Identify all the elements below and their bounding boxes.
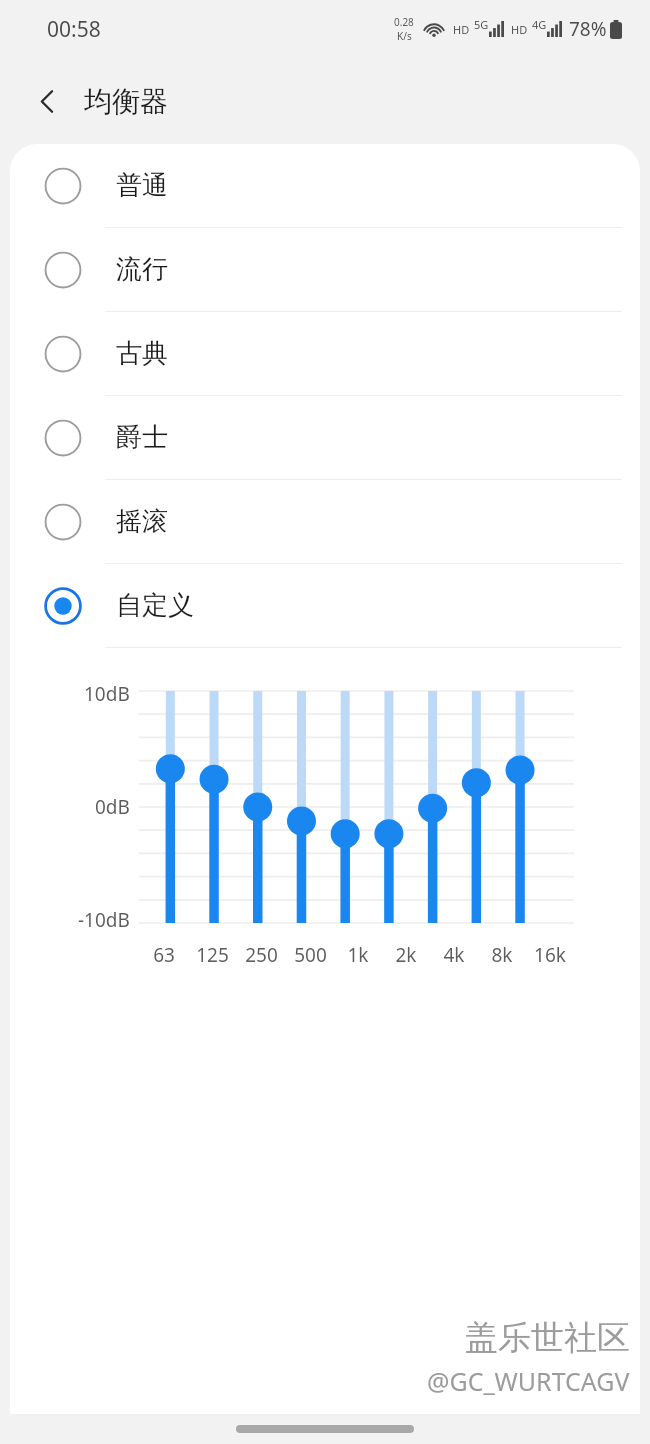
staticText: 78% [569,16,607,42]
button[interactable]: 自定义 [10,564,640,647]
staticText: HD [453,22,470,37]
staticText: 4G [532,17,547,32]
staticText: 125 [196,942,229,968]
staticText: 10dB [84,681,130,707]
staticText: 16k [534,942,566,968]
staticText: HD [511,22,528,37]
button[interactable]: 摇滚 [10,480,640,563]
button[interactable]: 流行 [10,228,640,311]
staticText: 爵士 [116,421,168,454]
staticText: 00:58 [47,15,101,44]
staticText: -10dB [78,907,130,933]
button[interactable]: 普通 [10,144,640,227]
staticText: 均衡器 [84,84,168,119]
staticText: 4k [443,942,465,968]
staticText: 250 [245,942,278,968]
staticText: @GC_WURTCAGV [427,1364,630,1398]
staticText: 普通 [116,169,168,202]
button[interactable]: Back [20,74,74,128]
staticText: K/s [397,29,412,43]
staticText: 500 [294,942,327,968]
staticText: 8k [491,942,513,968]
staticText: 5G [474,17,489,32]
staticText: 2k [395,942,417,968]
staticText: 流行 [116,253,168,286]
staticText: 63 [153,942,175,968]
button[interactable]: 爵士 [10,396,640,479]
staticText: 1k [347,942,369,968]
button[interactable]: 古典 [10,312,640,395]
staticText: 摇滚 [116,505,168,538]
staticText: 盖乐世社区 [465,1317,630,1359]
staticText: 自定义 [116,589,194,622]
staticText: 0dB [95,794,130,820]
staticText: 古典 [116,337,168,370]
staticText: 0.28 [394,15,414,29]
